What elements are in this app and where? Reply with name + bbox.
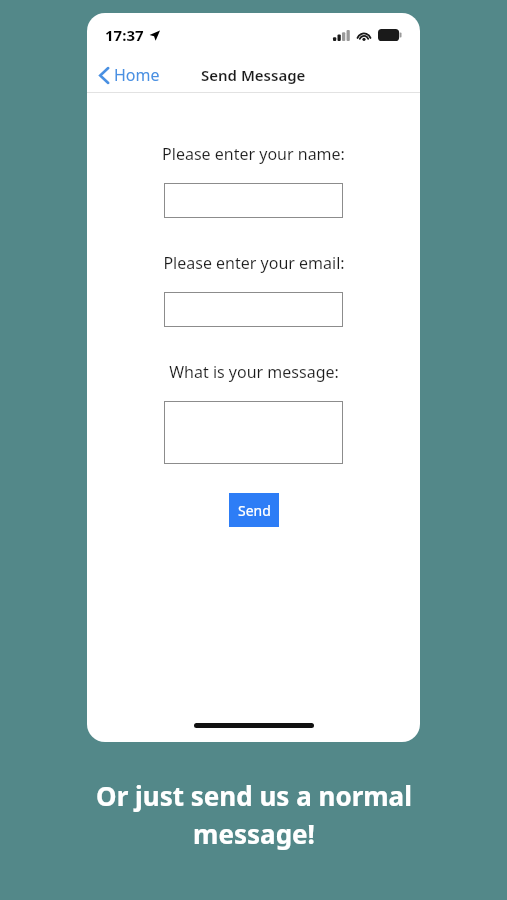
- staticText: 17:37: [105, 25, 144, 45]
- staticText: Send Message: [201, 65, 306, 85]
- button[interactable]: Text input field: [164, 401, 343, 464]
- button[interactable]: Text input field: [164, 292, 343, 327]
- staticText: Please enter your email:: [163, 252, 345, 274]
- staticText: Home: [114, 64, 160, 86]
- staticText: Or just send us a normal message!: [96, 778, 412, 851]
- staticText: What is your message:: [169, 361, 339, 383]
- staticText: Send: [238, 501, 271, 520]
- staticText: Please enter your name:: [162, 143, 345, 165]
- button[interactable]: Text input field: [164, 183, 343, 218]
- button[interactable]: Home: [95, 61, 164, 89]
- button[interactable]: Send: [229, 493, 279, 527]
